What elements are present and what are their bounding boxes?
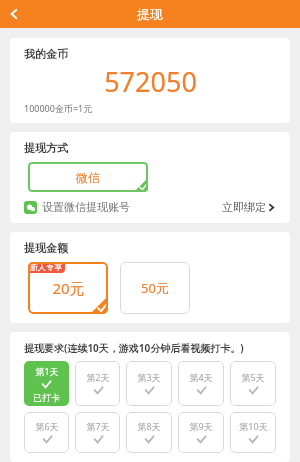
button[interactable]: 第9天 — [178, 412, 224, 453]
button[interactable]: 第2天 — [75, 361, 120, 406]
staticText: 50元 — [141, 279, 169, 297]
staticText: 20元 — [52, 278, 85, 298]
button[interactable]: 第7天 — [75, 412, 120, 453]
button[interactable]: 立即绑定 — [222, 200, 276, 214]
staticText: 第6天 — [35, 420, 59, 432]
staticText: 提现要求(连续10天，游戏10分钟后看视频打卡。) — [24, 341, 244, 355]
button[interactable]: 50元 — [120, 262, 190, 314]
staticText: 第1天 — [35, 365, 59, 377]
staticText: 第2天 — [86, 371, 110, 383]
button[interactable]: 20元 — [28, 262, 108, 314]
button[interactable]: 第5天 — [230, 361, 276, 406]
staticText: 第3天 — [137, 371, 161, 383]
staticText: 第4天 — [189, 371, 213, 383]
button[interactable]: 第10天 — [230, 412, 276, 453]
staticText: 微信 — [76, 170, 100, 185]
staticText: 提现金额 — [24, 241, 68, 255]
staticText: 新人专享 — [30, 262, 62, 272]
staticText: 100000金币=1元 — [24, 102, 93, 114]
button[interactable]: Back — [0, 0, 28, 28]
button[interactable]: 第1天 — [24, 361, 69, 406]
staticText: 第8天 — [137, 420, 161, 432]
button[interactable]: 第3天 — [126, 361, 172, 406]
staticText: 已打卡 — [33, 392, 60, 403]
staticText: 提现 — [137, 6, 163, 22]
staticText: 572050 — [104, 63, 197, 100]
button[interactable]: 第8天 — [126, 412, 172, 453]
staticText: 第7天 — [86, 420, 110, 432]
button[interactable]: 第4天 — [178, 361, 224, 406]
staticText: 我的金币 — [24, 47, 68, 61]
staticText: 第5天 — [241, 371, 265, 383]
staticText: 第10天 — [239, 420, 268, 432]
staticText: 第9天 — [189, 420, 213, 432]
staticText: 提现方式 — [24, 141, 68, 155]
staticText: 设置微信提现账号 — [42, 200, 130, 214]
button[interactable]: 微信 — [28, 162, 148, 192]
staticText: 立即绑定 — [222, 200, 266, 214]
button[interactable]: 第6天 — [24, 412, 69, 453]
